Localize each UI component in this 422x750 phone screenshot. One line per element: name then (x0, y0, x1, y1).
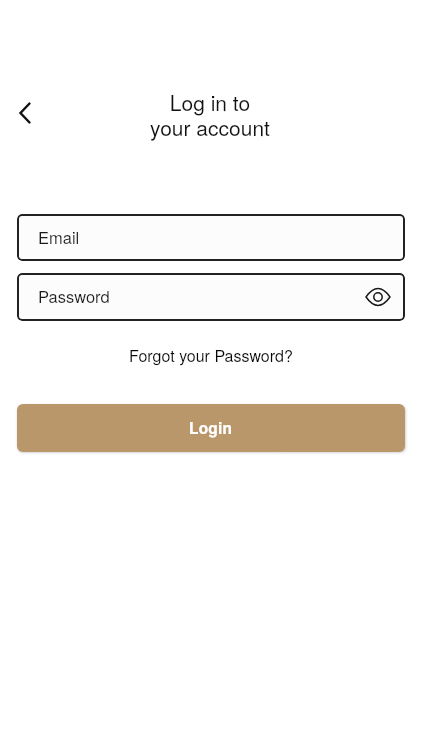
button[interactable]: Password (17, 273, 405, 321)
button[interactable] (7, 95, 43, 131)
staticText: Forgot your Password? (129, 344, 293, 367)
button[interactable]: Login (17, 404, 405, 452)
button[interactable]: Forgot your Password? (123, 338, 299, 373)
staticText: Login (189, 417, 233, 439)
button[interactable]: Email (17, 214, 405, 261)
staticText: Password (38, 284, 110, 308)
staticText: Log in to your account (0, 87, 421, 142)
button[interactable] (358, 277, 398, 317)
staticText: Email (38, 225, 80, 249)
